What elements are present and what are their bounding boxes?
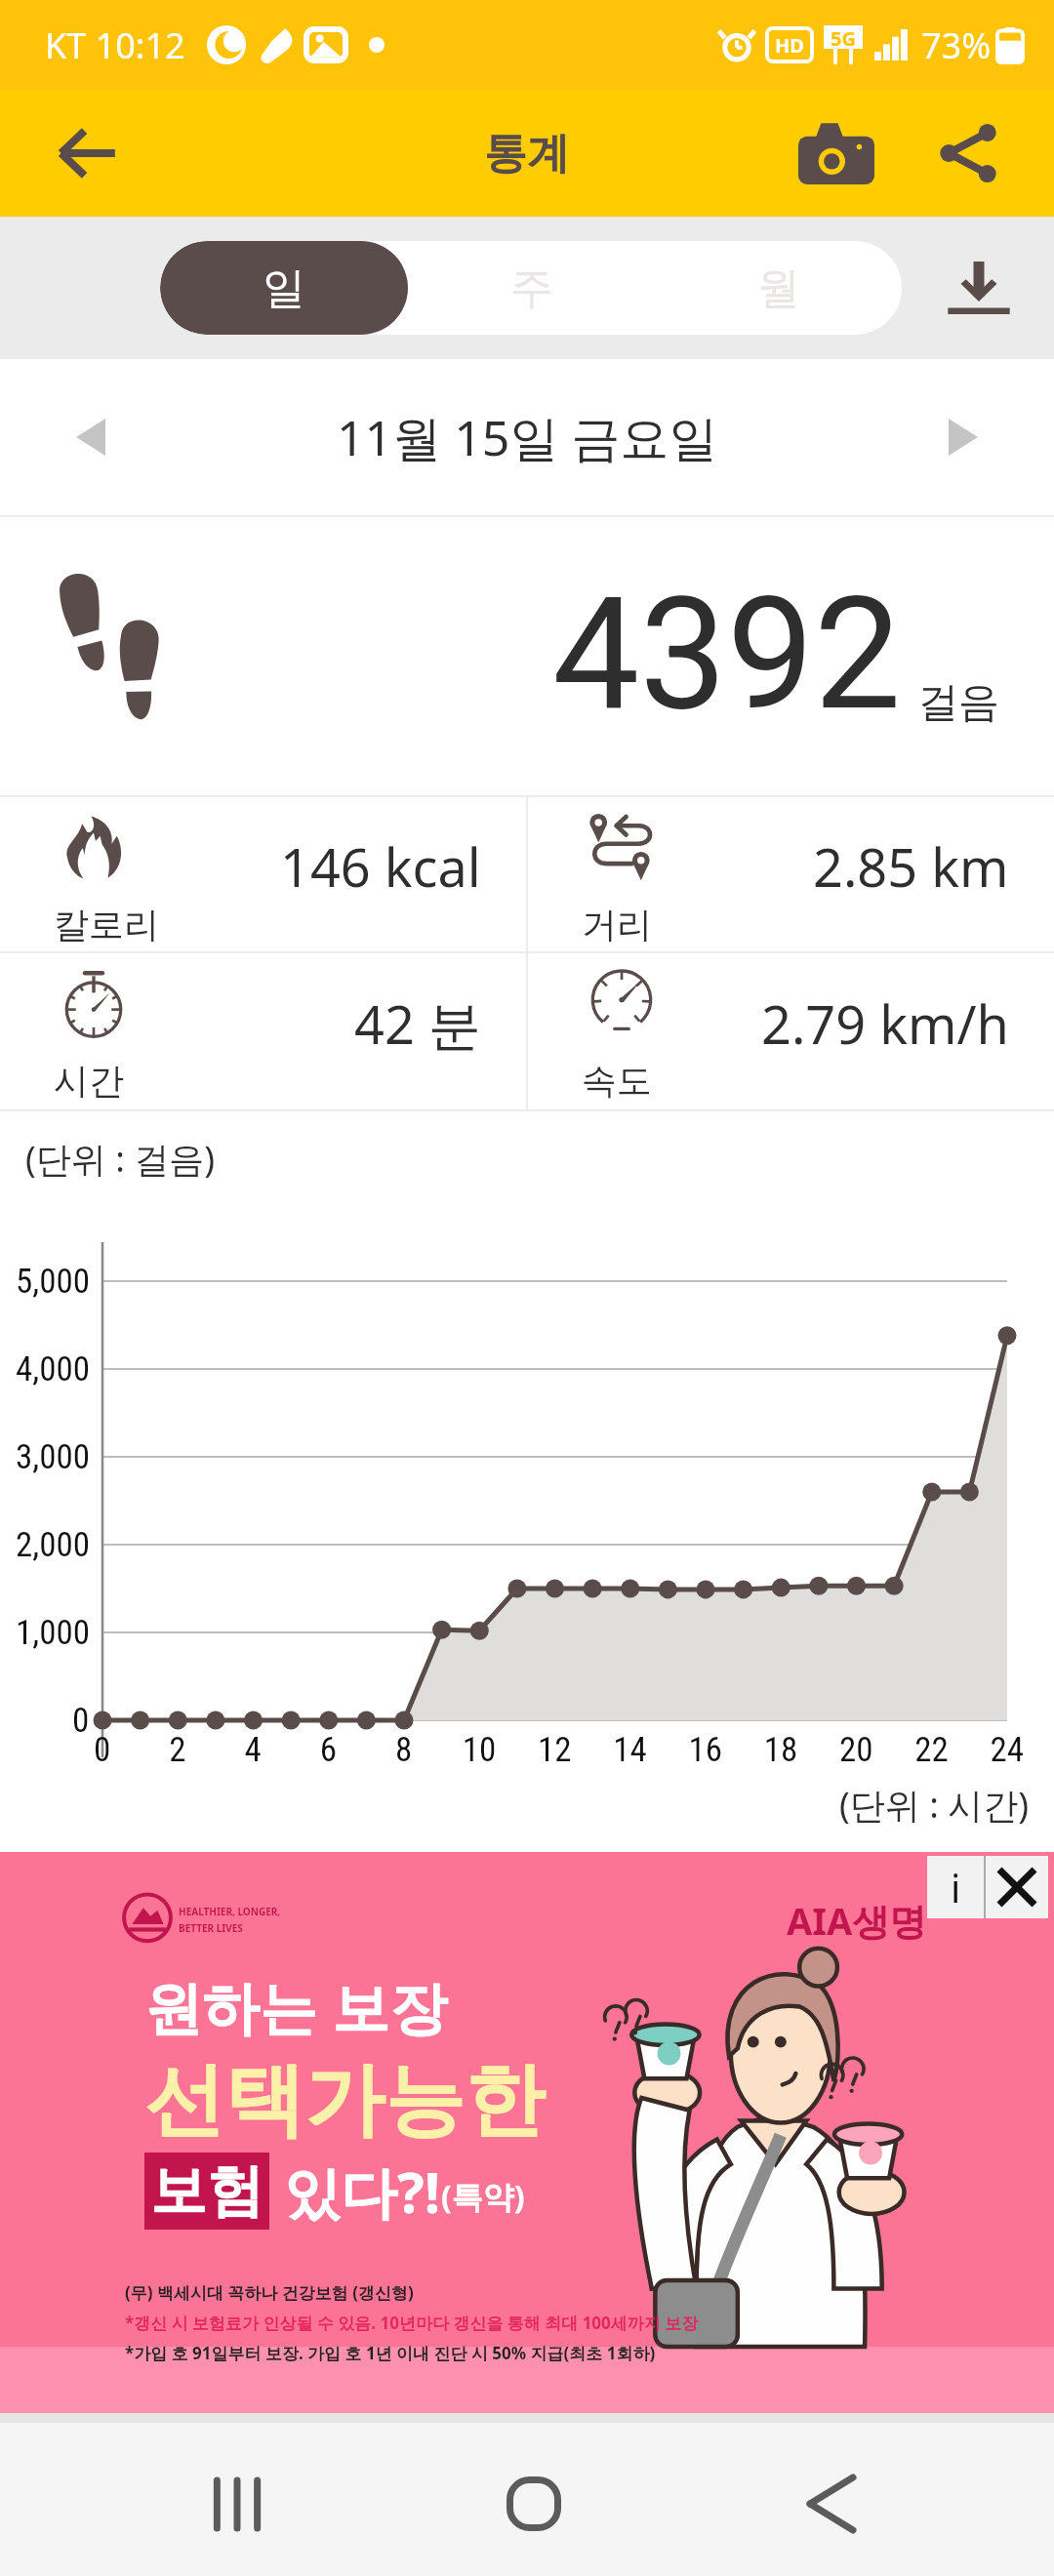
staticText: 일 bbox=[263, 262, 305, 315]
staticText: HD bbox=[775, 32, 804, 59]
button[interactable]: 거리 bbox=[528, 797, 1054, 951]
staticText: i bbox=[951, 1861, 961, 1913]
button[interactable]: Share bbox=[905, 96, 1032, 211]
staticText: 있다?! bbox=[269, 2153, 441, 2230]
staticText: 주 bbox=[510, 262, 553, 315]
staticText: 42 분 bbox=[354, 987, 481, 1060]
button[interactable]: Close ad bbox=[986, 1856, 1048, 1918]
staticText: (단위 : 시간) bbox=[839, 1781, 1029, 1829]
button[interactable]: 주 bbox=[408, 241, 655, 335]
button[interactable]: Previous day bbox=[47, 393, 135, 481]
staticText: 거리 bbox=[582, 903, 652, 946]
staticText: 2.79 km/h bbox=[761, 987, 1009, 1060]
staticText: KT 10:12 bbox=[45, 21, 185, 69]
button[interactable]: Camera bbox=[768, 96, 905, 211]
button[interactable]: Recents bbox=[179, 2428, 296, 2576]
button[interactable]: 칼로리 bbox=[0, 797, 526, 951]
staticText: AIA생명 bbox=[787, 1895, 927, 1946]
staticText: 146 kcal bbox=[280, 830, 481, 903]
button[interactable]: 일 bbox=[160, 241, 408, 335]
button[interactable]: HEALTHIER, LONGER, bbox=[0, 1852, 1054, 2413]
staticText: *갱신 시 보험료가 인상될 수 있음. 10년마다 갱신을 통해 최대 100… bbox=[125, 2312, 699, 2334]
staticText: 4392 bbox=[552, 563, 902, 745]
staticText: 73% bbox=[921, 21, 992, 69]
staticText: 선택가능한 bbox=[144, 2050, 545, 2151]
button[interactable]: Download bbox=[932, 241, 1026, 335]
staticText: 보험 bbox=[150, 2155, 263, 2227]
staticText: 5G bbox=[831, 25, 856, 49]
button[interactable]: Home bbox=[475, 2427, 592, 2576]
staticText: 통계 bbox=[484, 127, 570, 181]
staticText: (특약) bbox=[441, 2175, 525, 2218]
staticText: 칼로리 bbox=[54, 903, 159, 946]
staticText: 시간 bbox=[54, 1059, 124, 1103]
staticText: 11월 15일 금요일 bbox=[337, 404, 718, 470]
button[interactable]: Ad info bbox=[927, 1856, 984, 1918]
staticText: (무) 백세시대 꼭하나 건강보험 (갱신형) bbox=[125, 2281, 414, 2304]
button[interactable]: Back bbox=[773, 2427, 890, 2576]
staticText: *가입 호 91일부터 보장. 가입 호 1년 이내 진단 시 50% 지급(최… bbox=[125, 2342, 656, 2364]
staticText: HEALTHIER, LONGER, bbox=[179, 1905, 281, 1918]
staticText: 2.85 km bbox=[813, 830, 1009, 903]
staticText: 걸음 bbox=[917, 677, 999, 729]
staticText: BETTER LIVES bbox=[179, 1921, 243, 1935]
staticText: (단위 : 걸음) bbox=[25, 1135, 215, 1183]
button[interactable]: 월 bbox=[655, 241, 902, 335]
button[interactable]: Next day bbox=[919, 393, 1007, 481]
staticText: 속도 bbox=[582, 1059, 652, 1103]
button[interactable]: Back bbox=[33, 100, 141, 207]
button[interactable]: 시간 bbox=[0, 953, 526, 1109]
staticText: 원하는 보장 bbox=[144, 1967, 448, 2046]
staticText: 월 bbox=[757, 262, 800, 315]
button[interactable]: 속도 bbox=[528, 953, 1054, 1109]
